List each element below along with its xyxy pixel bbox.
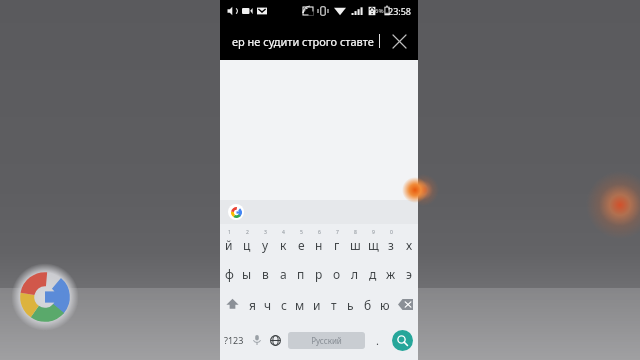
- button[interactable]: м: [292, 289, 308, 320]
- staticText: ш: [350, 237, 361, 253]
- button[interactable]: 1: [220, 224, 238, 258]
- staticText: ь: [347, 297, 354, 313]
- button[interactable]: ж: [382, 258, 400, 289]
- button[interactable]: ч: [260, 289, 276, 320]
- staticText: б: [364, 297, 372, 313]
- button[interactable]: п: [292, 258, 310, 289]
- button[interactable]: х: [400, 224, 418, 258]
- staticText: к: [280, 237, 287, 253]
- staticText: 5: [300, 229, 303, 236]
- staticText: а: [280, 266, 287, 282]
- staticText: я: [249, 297, 256, 313]
- button[interactable]: а: [274, 258, 292, 289]
- button[interactable]: ?123: [220, 320, 248, 360]
- button[interactable]: ю: [376, 289, 393, 320]
- staticText: о: [333, 266, 341, 282]
- staticText: 4: [282, 229, 285, 236]
- button[interactable]: Backspace: [393, 289, 418, 320]
- button[interactable]: Voice input: [248, 320, 266, 360]
- staticText: 9: [372, 229, 375, 236]
- staticText: ?123: [224, 334, 244, 346]
- staticText: д: [369, 266, 377, 282]
- button[interactable]: ы: [238, 258, 256, 289]
- staticText: 23:58: [388, 5, 412, 17]
- staticText: м: [295, 297, 305, 313]
- staticText: 1: [228, 229, 231, 236]
- button[interactable]: э: [400, 258, 418, 289]
- staticText: ы: [242, 266, 252, 282]
- button[interactable]: и: [308, 289, 325, 320]
- button[interactable]: Search: [392, 330, 413, 351]
- staticText: ер не судити строго ставте лай: [232, 34, 379, 49]
- staticText: й: [225, 237, 233, 253]
- staticText: 8: [354, 229, 357, 236]
- button[interactable]: б: [359, 289, 376, 320]
- staticText: 7: [336, 229, 339, 236]
- staticText: Русский: [311, 335, 342, 346]
- button[interactable]: с: [276, 289, 292, 320]
- button[interactable]: 3: [256, 224, 274, 258]
- button[interactable]: 5: [292, 224, 310, 258]
- button[interactable]: .: [368, 320, 387, 360]
- button[interactable]: 7: [328, 224, 346, 258]
- staticText: 0: [390, 229, 393, 236]
- staticText: з: [388, 237, 394, 253]
- button[interactable]: 9: [364, 224, 382, 258]
- button[interactable]: Google search: [228, 204, 244, 220]
- staticText: ж: [386, 266, 396, 282]
- button[interactable]: ер не судити строго ставте лай: [220, 22, 418, 60]
- button[interactable]: 0: [382, 224, 400, 258]
- button[interactable]: Русский: [288, 332, 365, 349]
- button[interactable]: Clear query: [388, 30, 410, 52]
- staticText: х: [406, 237, 413, 253]
- staticText: с: [281, 297, 287, 313]
- staticText: э: [406, 266, 412, 282]
- staticText: п: [297, 266, 305, 282]
- staticText: в: [262, 266, 269, 282]
- button[interactable]: в: [256, 258, 274, 289]
- staticText: г: [334, 237, 340, 253]
- staticText: и: [313, 297, 321, 313]
- button[interactable]: Change language: [266, 320, 285, 360]
- staticText: е: [298, 237, 305, 253]
- button[interactable]: л: [346, 258, 364, 289]
- button[interactable]: р: [310, 258, 328, 289]
- button[interactable]: ь: [342, 289, 359, 320]
- staticText: л: [351, 266, 359, 282]
- staticText: 3: [264, 229, 267, 236]
- staticText: ч: [264, 297, 272, 313]
- button[interactable]: Shift: [220, 289, 244, 320]
- staticText: 2: [246, 229, 249, 236]
- button[interactable]: 4: [274, 224, 292, 258]
- button[interactable]: т: [325, 289, 342, 320]
- staticText: у: [262, 237, 269, 253]
- staticText: ф: [225, 266, 234, 282]
- staticText: р: [315, 266, 323, 282]
- button[interactable]: о: [328, 258, 346, 289]
- staticText: т: [331, 297, 337, 313]
- button[interactable]: 8: [346, 224, 364, 258]
- staticText: ю: [380, 297, 390, 313]
- button[interactable]: ф: [220, 258, 238, 289]
- staticText: 6: [318, 229, 321, 236]
- staticText: .: [376, 333, 379, 348]
- button[interactable]: я: [244, 289, 260, 320]
- button[interactable]: 2: [238, 224, 256, 258]
- staticText: н: [315, 237, 323, 253]
- button[interactable]: 6: [310, 224, 328, 258]
- staticText: 6%: [375, 7, 384, 15]
- staticText: ц: [243, 237, 251, 253]
- staticText: щ: [368, 237, 379, 253]
- button[interactable]: д: [364, 258, 382, 289]
